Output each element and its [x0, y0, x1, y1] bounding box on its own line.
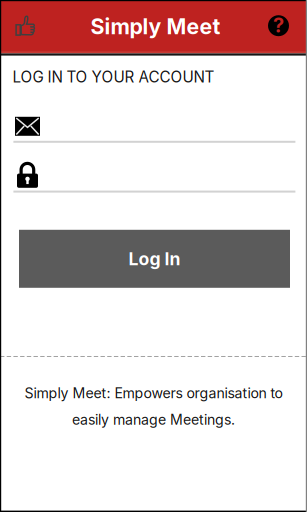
staticText: Simply Meet	[90, 14, 220, 39]
button[interactable]: Help	[259, 7, 297, 45]
button[interactable]: Password	[13, 162, 295, 193]
button[interactable]: Log In	[19, 230, 290, 288]
staticText: ?	[273, 13, 284, 37]
staticText: Log In	[128, 248, 180, 269]
staticText: LOG IN TO YOUR ACCOUNT	[13, 68, 215, 86]
staticText: Simply Meet: Empowers organisation to	[24, 385, 282, 402]
button[interactable]: Like	[5, 5, 45, 45]
button[interactable]: Email address	[13, 117, 295, 143]
staticText: easily manage Meetings.	[72, 411, 235, 428]
